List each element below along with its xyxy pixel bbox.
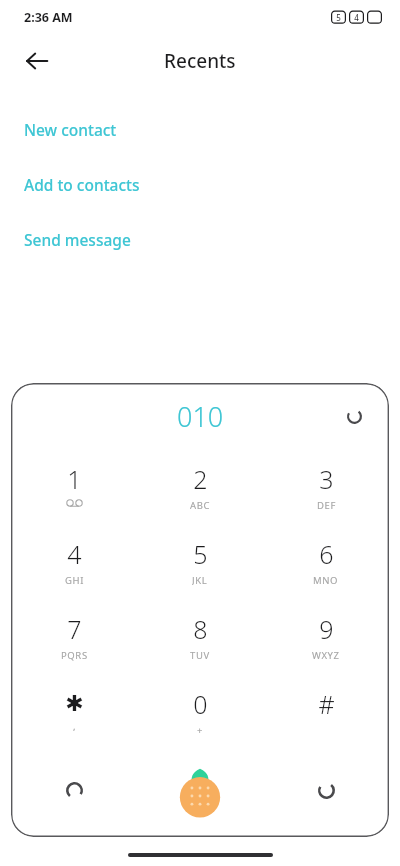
button[interactable]: Add to contacts [0, 157, 400, 212]
staticText: TUV [190, 649, 210, 661]
staticText: 5 [336, 12, 341, 23]
button[interactable]: 0 [137, 674, 263, 749]
staticText: 010 [177, 398, 224, 435]
staticText: 9 [319, 612, 334, 646]
button[interactable]: 8 [137, 599, 263, 674]
staticText: # [318, 687, 335, 721]
button[interactable]: 6 [263, 524, 389, 599]
staticText: GHI [65, 574, 84, 586]
button[interactable]: 2 [137, 449, 263, 524]
staticText: 5 [193, 537, 208, 571]
staticText: 6 [319, 537, 334, 571]
button[interactable]: Backspace [333, 395, 375, 437]
staticText: JKL [192, 574, 208, 586]
button[interactable]: 5 [137, 524, 263, 599]
button[interactable]: ✱ [11, 674, 137, 749]
staticText: 1 [67, 462, 82, 496]
staticText: PQRS [61, 649, 88, 661]
staticText: MNO [313, 574, 339, 586]
staticText: 2 [193, 462, 208, 496]
staticText: 4 [354, 12, 359, 23]
button[interactable]: # [263, 674, 389, 749]
button[interactable]: 1 [11, 449, 137, 524]
button[interactable]: Video call [11, 749, 137, 831]
button[interactable]: Send message [0, 212, 400, 267]
staticText: Recents [164, 48, 236, 74]
staticText: , [73, 720, 77, 732]
staticText: 3 [319, 462, 334, 496]
staticText: ✱ [65, 691, 84, 717]
staticText: 4 [67, 537, 82, 571]
staticText: + [197, 724, 204, 736]
staticText: Add to contacts [24, 174, 140, 195]
button[interactable]: 9 [263, 599, 389, 674]
staticText: 7 [67, 612, 82, 646]
button[interactable]: 7 [11, 599, 137, 674]
button[interactable]: Call [137, 749, 263, 831]
staticText: ABC [190, 499, 211, 511]
staticText: New contact [24, 119, 117, 140]
button[interactable]: New contact [0, 102, 400, 157]
button[interactable]: 3 [263, 449, 389, 524]
staticText: 2:36 AM [24, 9, 73, 26]
staticText: 0 [193, 687, 208, 721]
button[interactable]: Back [14, 38, 60, 84]
staticText: DEF [317, 499, 336, 511]
staticText: WXYZ [312, 649, 340, 661]
button[interactable]: Hide dialpad [263, 749, 389, 831]
button[interactable]: 4 [11, 524, 137, 599]
staticText: Send message [24, 229, 131, 250]
staticText: 8 [193, 612, 208, 646]
